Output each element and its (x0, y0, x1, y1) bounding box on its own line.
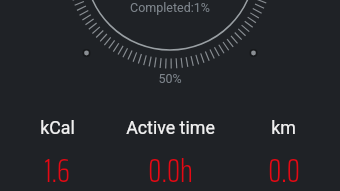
button[interactable]: km (227, 0, 340, 191)
staticText: km (271, 117, 296, 138)
staticText: 0.0h (148, 145, 193, 191)
button[interactable]: Active time (114, 0, 227, 191)
other: Daily goal progress dial, 1% completed (0, 0, 340, 191)
staticText: 50% (158, 71, 182, 86)
button[interactable]: kCal (0, 0, 114, 191)
staticText: Completed:1% (130, 0, 210, 15)
staticText: 1.6 (44, 145, 70, 191)
staticText: 0.0 (268, 145, 300, 191)
staticText: kCal (40, 117, 75, 138)
staticText: Active time (126, 117, 215, 138)
